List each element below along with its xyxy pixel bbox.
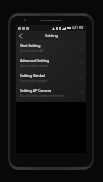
button[interactable]: Shot Setting [16,40,86,55]
staticText: Setting AP Camera [20,88,52,93]
staticText: You can set for gimbal [20,79,48,83]
staticText: You can set for camera environment [20,94,65,98]
staticText: Setting [45,33,58,38]
staticText: You can set for camera [20,64,48,68]
staticText: Shot Setting [20,43,41,48]
staticText: Advanced Setting [20,58,50,63]
button[interactable]: Setting Gimbal [16,70,86,85]
staticText: Setting Gimbal [20,73,45,78]
button[interactable]: Advanced Setting [16,55,86,70]
button[interactable]: Back [16,31,25,40]
staticText: You can set for UAV [20,49,44,53]
staticText: 4:21 PM [72,26,84,30]
button[interactable]: Setting AP Camera [16,85,86,100]
